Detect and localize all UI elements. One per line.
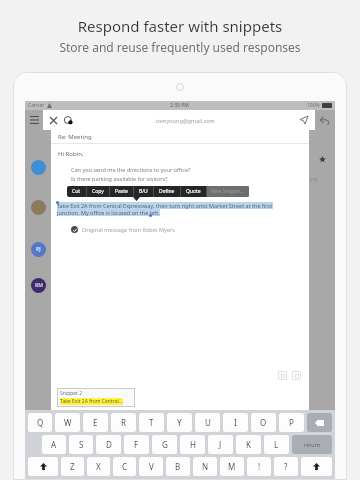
button[interactable]: B — [166, 457, 190, 476]
button[interactable]: A — [42, 435, 66, 454]
staticText: T — [149, 417, 154, 428]
button[interactable]: F — [124, 435, 149, 454]
staticText: S — [79, 439, 84, 450]
button[interactable]: H — [180, 435, 205, 454]
button[interactable]: B/U — [134, 186, 153, 197]
button[interactable]: Star — [318, 155, 327, 164]
staticText: return — [304, 441, 321, 448]
staticText: W — [64, 417, 72, 428]
staticText: tomyoung@gmail.com — [156, 117, 215, 124]
button[interactable]: Close — [48, 115, 59, 126]
button[interactable]: Avatar — [31, 278, 46, 293]
staticText: U — [205, 417, 211, 428]
button[interactable]: Copy — [87, 186, 109, 197]
button[interactable]: K — [236, 435, 261, 454]
staticText: ing — [310, 176, 318, 183]
button[interactable]: Next — [292, 371, 301, 380]
button[interactable]: Avatar — [31, 160, 46, 175]
staticText: ! — [258, 461, 261, 472]
button[interactable]: ? — [274, 457, 298, 476]
button[interactable]: W — [55, 413, 80, 432]
button[interactable]: Snippet 2 — [57, 388, 135, 407]
staticText: ? — [284, 461, 288, 472]
staticText: junction. My office is located on the le… — [57, 209, 160, 216]
staticText: Copy — [92, 188, 104, 195]
button[interactable]: P — [279, 413, 304, 432]
button[interactable]: O — [251, 413, 276, 432]
button[interactable]: I — [223, 413, 248, 432]
staticText: Define — [159, 188, 175, 195]
staticText: Respond faster with snippets — [0, 16, 360, 36]
staticText: D — [106, 439, 112, 450]
button[interactable]: return — [292, 435, 332, 454]
staticText: I — [234, 417, 237, 428]
staticText: Can you send me the directions to your o… — [71, 166, 191, 173]
staticText: RM — [35, 282, 43, 289]
button[interactable]: Menu — [25, 110, 43, 130]
staticText: Hi Robin, — [58, 150, 84, 158]
button[interactable]: Send — [298, 114, 310, 126]
staticText: 100% — [307, 102, 320, 109]
staticText: Is there parking available for visitors? — [71, 175, 168, 182]
staticText: Take Exit 2A from Central... — [60, 398, 123, 405]
button[interactable]: Avatar — [31, 200, 46, 215]
staticText: Quote — [186, 188, 201, 195]
button[interactable]: Attach — [63, 115, 74, 126]
button[interactable]: N — [193, 457, 217, 476]
button[interactable]: Shift — [28, 457, 58, 476]
button[interactable]: Paste — [110, 186, 133, 197]
button[interactable]: G — [152, 435, 177, 454]
staticText: V — [149, 461, 154, 472]
staticText: Snippet 2 — [60, 390, 83, 397]
staticText: J — [219, 439, 222, 450]
staticText: X — [96, 461, 101, 472]
staticText: E — [93, 417, 98, 428]
button[interactable]: R — [111, 413, 136, 432]
staticText: G — [162, 439, 168, 450]
button[interactable]: Avatar — [31, 242, 46, 257]
button[interactable]: Quote — [181, 186, 206, 197]
button[interactable]: S — [69, 435, 93, 454]
staticText: B — [175, 461, 181, 472]
button[interactable]: L — [264, 435, 289, 454]
staticText: F — [134, 439, 139, 450]
button[interactable]: Backspace — [307, 413, 332, 432]
staticText: O — [260, 417, 267, 428]
button[interactable]: ! — [247, 457, 271, 476]
button[interactable]: Reply — [315, 110, 335, 130]
staticText: H — [190, 439, 196, 450]
staticText: New Snippet... — [211, 188, 245, 195]
staticText: Paste — [115, 188, 128, 195]
staticText: Original message from Robin Myers — [82, 226, 175, 233]
staticText: Store and reuse frequently used response… — [0, 39, 360, 55]
staticText: Re: Meeting — [58, 133, 92, 141]
staticText: P — [289, 417, 294, 428]
button[interactable]: C — [113, 457, 136, 476]
button[interactable]: Previous — [278, 371, 287, 380]
staticText: 2:35 PM — [170, 102, 189, 109]
staticText: B/U — [139, 188, 148, 195]
button[interactable]: Cut — [67, 186, 86, 197]
button[interactable]: D — [96, 435, 121, 454]
staticText: Q — [37, 417, 44, 428]
button[interactable]: E — [83, 413, 108, 432]
button[interactable]: New Snippet... — [211, 186, 245, 197]
button[interactable]: X — [87, 457, 110, 476]
staticText: K — [246, 439, 251, 450]
staticText: PJ — [36, 246, 41, 253]
button[interactable]: U — [195, 413, 220, 432]
button[interactable]: Q — [28, 413, 52, 432]
button[interactable]: J — [208, 435, 233, 454]
button[interactable]: T — [139, 413, 164, 432]
button[interactable]: V — [139, 457, 163, 476]
staticText: M — [228, 461, 236, 472]
button[interactable]: Y — [167, 413, 192, 432]
button[interactable]: M — [220, 457, 244, 476]
button[interactable]: Shift — [301, 457, 332, 476]
staticText: N — [202, 461, 209, 472]
staticText: Take Exit 2A from Central Expressway, th… — [57, 202, 273, 209]
button[interactable]: Z — [61, 457, 84, 476]
staticText: C — [122, 461, 128, 472]
staticText: Z — [70, 461, 75, 472]
button[interactable]: Define — [154, 186, 180, 197]
